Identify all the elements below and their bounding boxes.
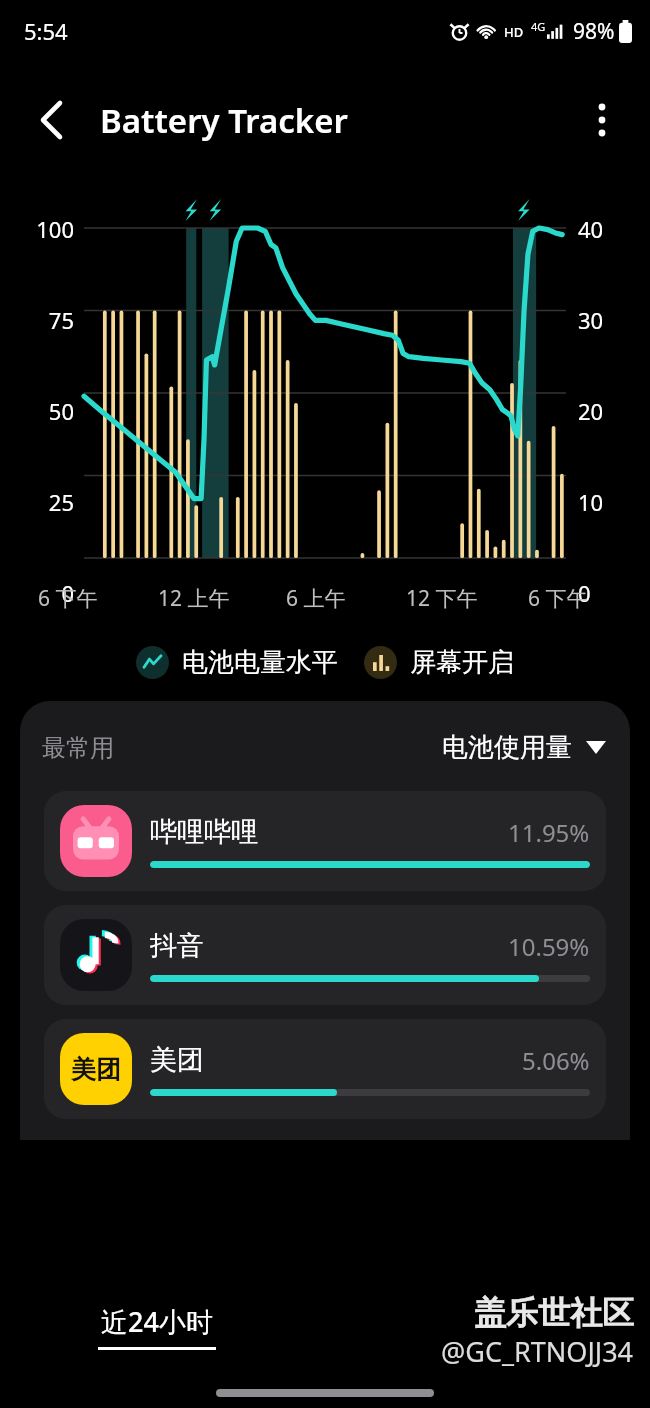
- staticText: 近24小时: [101, 1303, 213, 1340]
- staticText: Battery Tracker: [100, 98, 348, 143]
- button[interactable]: 电池使用量: [436, 725, 612, 770]
- staticText: @GC_RTNOJJ34: [441, 1333, 634, 1370]
- button[interactable]: 哔哩哔哩: [44, 791, 606, 891]
- staticText: 30: [578, 305, 634, 335]
- staticText: 6 下午: [38, 584, 138, 613]
- staticText: 40: [578, 214, 634, 244]
- button[interactable]: More options: [574, 92, 630, 148]
- staticText: 5:54: [24, 16, 68, 46]
- staticText: HD: [504, 23, 524, 41]
- staticText: 电池使用量: [442, 731, 572, 764]
- staticText: 12 上午: [158, 584, 258, 613]
- staticText: 盖乐世社区: [474, 1293, 634, 1333]
- staticText: 0: [578, 578, 634, 608]
- staticText: 98%: [573, 17, 615, 46]
- staticText: 20: [578, 396, 634, 426]
- staticText: 25: [18, 487, 74, 517]
- button[interactable]: 近24小时: [98, 1303, 216, 1350]
- staticText: 4G: [531, 19, 546, 34]
- button[interactable]: Back: [22, 91, 80, 149]
- staticText: 5.06%: [522, 1044, 590, 1077]
- staticText: 哔哩哔哩: [150, 815, 258, 849]
- staticText: 电池电量水平: [182, 646, 338, 679]
- staticText: 6 上午: [286, 584, 386, 613]
- staticText: 100: [18, 214, 74, 244]
- staticText: 50: [18, 396, 74, 426]
- staticText: 抖音: [150, 929, 204, 963]
- staticText: 屏幕开启: [410, 646, 514, 679]
- staticText: 美团: [71, 1054, 121, 1085]
- staticText: 11.95%: [508, 816, 590, 849]
- staticText: 10: [578, 487, 634, 517]
- button[interactable]: 抖音: [44, 905, 606, 1005]
- staticText: 75: [18, 305, 74, 335]
- staticText: 10.59%: [508, 930, 590, 963]
- staticText: 最常用: [42, 733, 114, 763]
- staticText: 12 下午: [406, 584, 506, 613]
- button[interactable]: 美团: [44, 1019, 606, 1119]
- staticText: 6 下午: [528, 584, 628, 613]
- staticText: 0: [18, 578, 74, 608]
- staticText: 美团: [150, 1043, 204, 1077]
